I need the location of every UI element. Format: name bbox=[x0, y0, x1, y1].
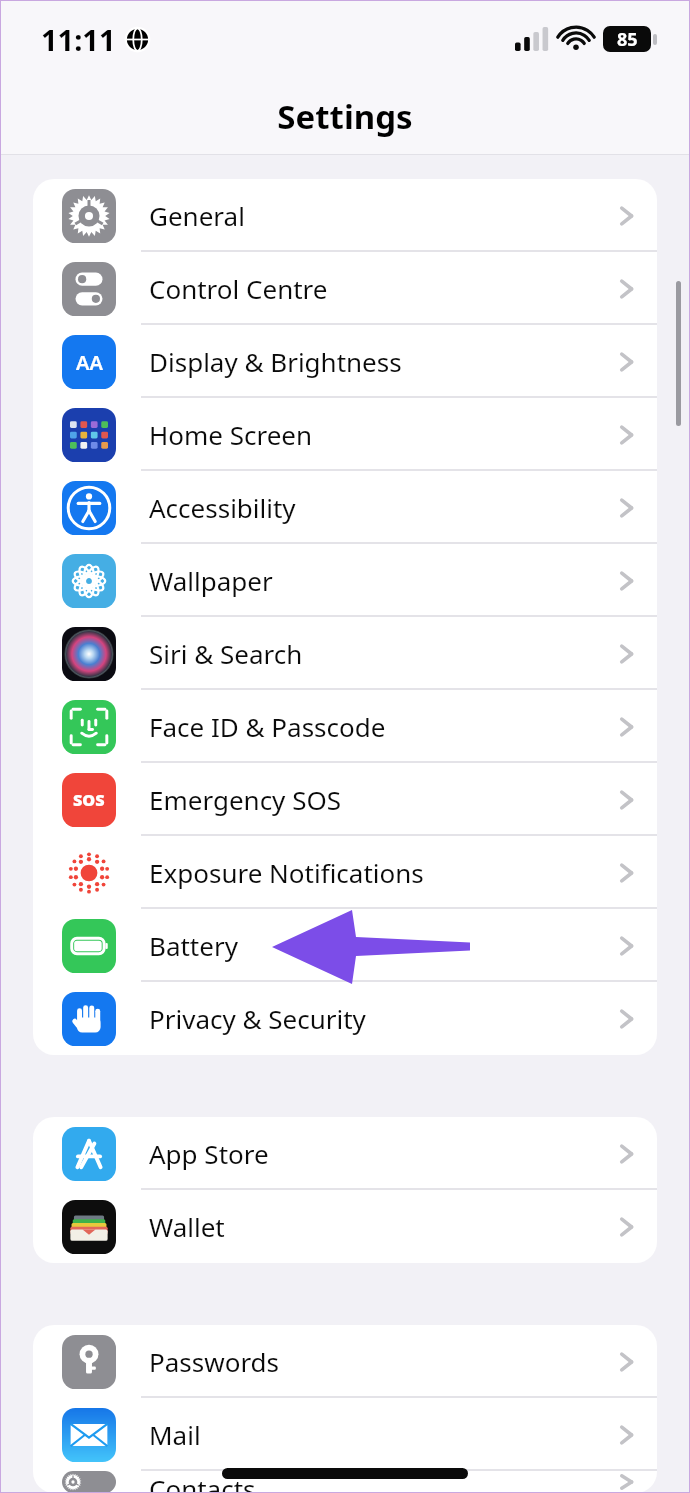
button[interactable]: Siri & Search bbox=[33, 617, 657, 690]
staticText: Emergency SOS bbox=[149, 782, 341, 817]
staticText: Mail bbox=[149, 1417, 201, 1452]
button[interactable]: Face ID & Passcode bbox=[33, 690, 657, 763]
button[interactable]: Home Screen bbox=[33, 398, 657, 471]
button[interactable]: Battery bbox=[33, 909, 657, 982]
button[interactable]: Contacts bbox=[33, 1471, 657, 1493]
staticText: AA bbox=[76, 349, 103, 376]
button[interactable]: SOS bbox=[33, 763, 657, 836]
staticText: Wallet bbox=[149, 1209, 225, 1244]
staticText: Passwords bbox=[149, 1344, 280, 1379]
staticText: Wallpaper bbox=[149, 563, 273, 598]
button[interactable]: App Store bbox=[33, 1117, 657, 1190]
staticText: 85 bbox=[617, 27, 638, 52]
staticText: Face ID & Passcode bbox=[149, 709, 386, 744]
staticText: Display & Brightness bbox=[149, 344, 402, 379]
button[interactable]: Exposure Notifications bbox=[33, 836, 657, 909]
button[interactable]: Privacy & Security bbox=[33, 982, 657, 1055]
button[interactable]: Accessibility bbox=[33, 471, 657, 544]
button[interactable]: Passwords bbox=[33, 1325, 657, 1398]
button[interactable]: AA bbox=[33, 325, 657, 398]
staticText: 11:11 bbox=[41, 20, 116, 59]
staticText: SOS bbox=[73, 789, 105, 811]
staticText: Privacy & Security bbox=[149, 1001, 366, 1036]
button[interactable]: Wallet bbox=[33, 1190, 657, 1263]
staticText: Battery bbox=[149, 928, 238, 963]
staticText: Home Screen bbox=[149, 417, 313, 452]
staticText: Contacts bbox=[149, 1471, 256, 1493]
staticText: App Store bbox=[149, 1136, 269, 1171]
button[interactable]: Mail bbox=[33, 1398, 657, 1471]
staticText: Control Centre bbox=[149, 271, 328, 306]
button[interactable]: Control Centre bbox=[33, 252, 657, 325]
staticText: Settings bbox=[277, 94, 413, 139]
button[interactable]: General bbox=[33, 179, 657, 252]
staticText: Siri & Search bbox=[149, 636, 303, 671]
staticText: Accessibility bbox=[149, 490, 296, 525]
staticText: Exposure Notifications bbox=[149, 855, 424, 890]
staticText: General bbox=[149, 198, 245, 233]
button[interactable]: Wallpaper bbox=[33, 544, 657, 617]
